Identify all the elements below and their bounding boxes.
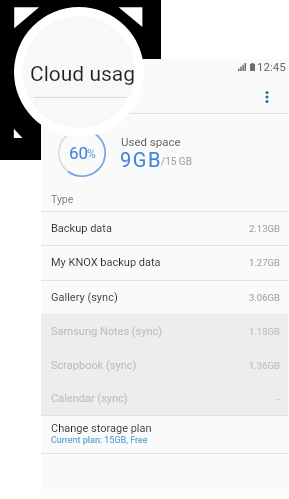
- button[interactable]: Scrapbook (sync): [41, 348, 288, 382]
- staticText: %: [87, 147, 96, 161]
- staticText: Calendar (sync): [51, 392, 128, 405]
- staticText: Scrapbook (sync): [51, 359, 137, 372]
- staticText: Current plan: 15GB, Free: [51, 435, 148, 446]
- button[interactable]: Change storage plan: [41, 415, 288, 454]
- staticText: -: [277, 393, 280, 404]
- staticText: 1.27GB: [249, 257, 280, 268]
- staticText: Cloud usage: [30, 62, 135, 87]
- staticText: 3.06GB: [249, 292, 280, 303]
- button[interactable]: Backup data: [41, 211, 288, 246]
- staticText: Type: [51, 193, 74, 205]
- staticText: 60: [69, 143, 89, 163]
- staticText: 1.36GB: [249, 360, 280, 371]
- button[interactable]: Gallery (sync): [41, 280, 288, 314]
- button[interactable]: More options: [255, 85, 279, 109]
- button[interactable]: My KNOX backup data: [41, 245, 288, 280]
- staticText: Samsung Notes (sync): [51, 325, 163, 338]
- staticText: My KNOX backup data: [51, 256, 161, 269]
- staticText: /15 GB: [161, 156, 192, 168]
- staticText: Gallery (sync): [51, 291, 118, 304]
- staticText: 2.13GB: [249, 223, 280, 234]
- staticText: 9GB: [120, 148, 163, 171]
- staticText: Used space: [121, 135, 181, 148]
- button[interactable]: [41, 114, 288, 210]
- staticText: 12:45: [257, 60, 286, 73]
- staticText: 1.18GB: [249, 326, 280, 337]
- staticText: Cloud usage: [51, 89, 123, 104]
- button[interactable]: Calendar (sync): [41, 382, 288, 415]
- button[interactable]: Samsung Notes (sync): [41, 314, 288, 348]
- staticText: Change storage plan: [51, 422, 152, 435]
- staticText: Backup data: [51, 222, 112, 235]
